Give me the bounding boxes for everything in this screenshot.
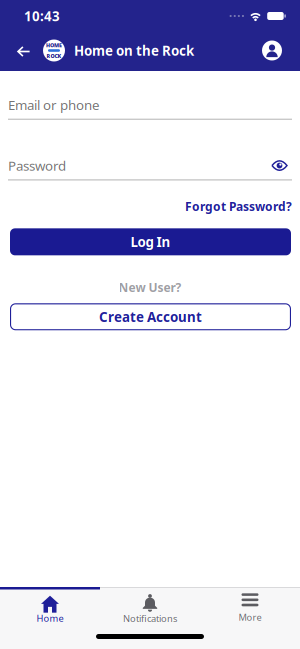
staticText: Home <box>36 612 63 624</box>
staticText: Create Account <box>99 308 202 326</box>
button[interactable]: Notifications <box>100 589 200 625</box>
button[interactable]: Show password <box>271 160 288 172</box>
button[interactable]: Log In <box>0 228 300 255</box>
button[interactable]: Back <box>0 44 43 56</box>
button[interactable]: Home <box>0 589 100 625</box>
button[interactable]: More <box>200 589 300 625</box>
staticText: 10:43 <box>24 7 60 25</box>
staticText: HOME <box>46 42 62 49</box>
staticText: Log In <box>130 233 170 251</box>
staticText: Forgot Password? <box>185 198 292 214</box>
staticText: New User? <box>118 279 181 295</box>
staticText: Home on the Rock <box>74 42 194 59</box>
button[interactable]: Forgot Password? <box>185 198 292 214</box>
staticText: Notifications <box>123 612 177 625</box>
staticText: ROCK <box>46 52 61 59</box>
button[interactable]: Account <box>262 40 300 60</box>
staticText: Email or phone <box>8 96 100 114</box>
staticText: Password <box>8 157 66 174</box>
staticText: More <box>238 611 261 623</box>
button[interactable]: Create Account <box>0 303 300 330</box>
